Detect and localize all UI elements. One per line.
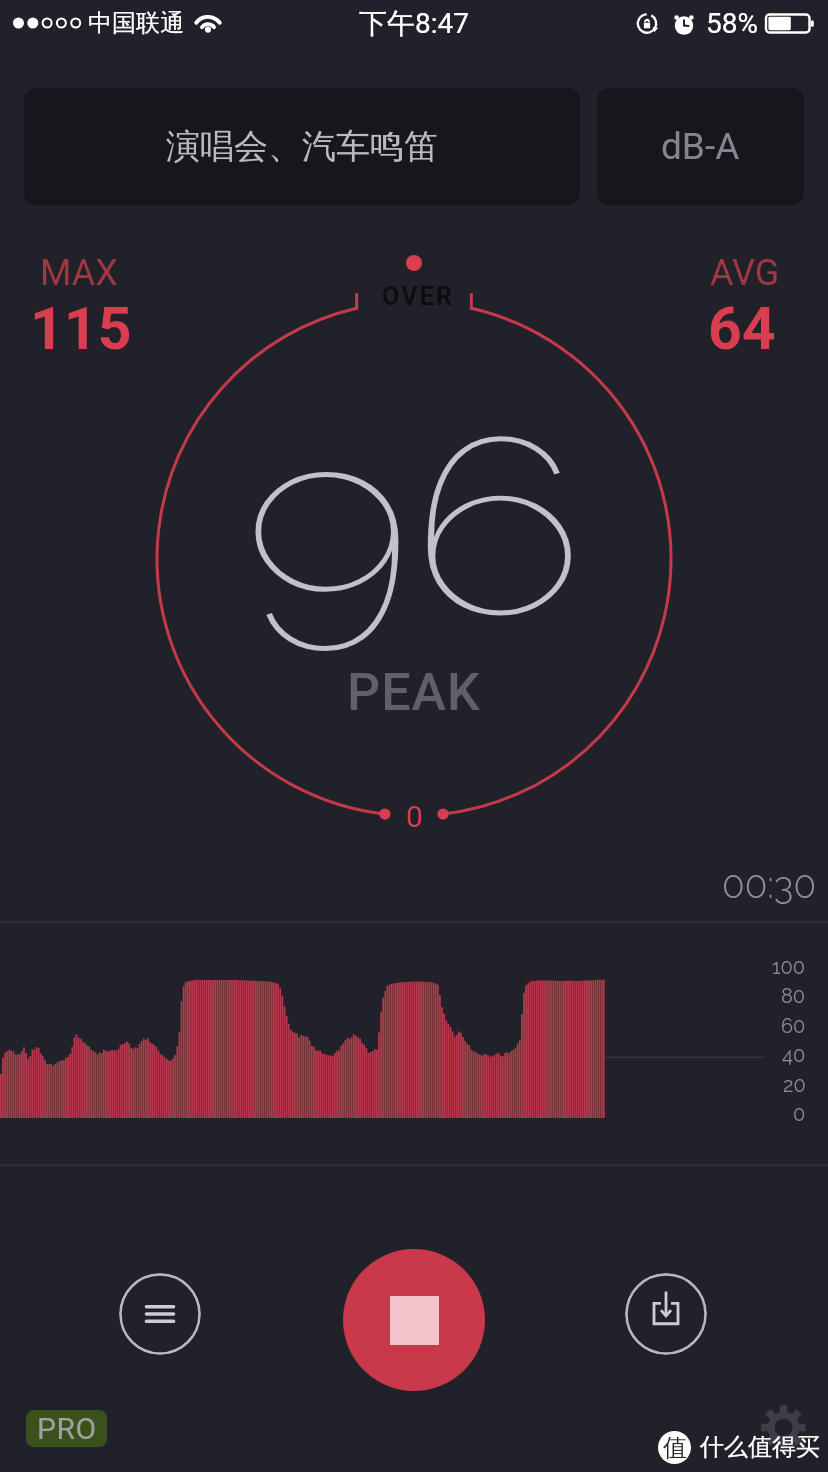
staticText: PRO <box>37 1411 97 1446</box>
staticText: OVER <box>382 282 455 311</box>
staticText: 0 <box>406 799 423 834</box>
staticText: 20 <box>783 1073 806 1096</box>
staticText: dB-A <box>661 125 740 168</box>
button[interactable]: 演唱会、汽车鸣笛 <box>24 88 580 205</box>
staticText: 58% <box>706 7 758 40</box>
button[interactable]: Save <box>625 1273 707 1355</box>
staticText: 什么值得买 <box>700 1432 820 1462</box>
staticText: 演唱会、汽车鸣笛 <box>166 125 438 168</box>
staticText: 64 <box>708 294 776 363</box>
button[interactable]: PRO <box>26 1410 107 1447</box>
staticText: AVG <box>710 252 780 294</box>
staticText: 96 <box>245 381 583 671</box>
staticText: 值 <box>663 1433 687 1463</box>
staticText: 100 <box>772 955 806 978</box>
staticText: 00:30 <box>0 863 816 906</box>
staticText: 115 <box>30 294 132 363</box>
button[interactable]: Menu <box>119 1273 201 1355</box>
staticText: MAX <box>40 252 118 294</box>
button[interactable]: dB-A <box>597 88 804 205</box>
staticText: 中国联通 <box>88 8 184 38</box>
staticText: 80 <box>781 984 806 1007</box>
staticText: 下午8:47 <box>359 6 469 41</box>
button[interactable]: Stop recording <box>343 1249 485 1391</box>
staticText: 0 <box>793 1102 806 1125</box>
staticText: 60 <box>781 1014 806 1037</box>
staticText: PEAK <box>347 662 481 723</box>
staticText: 40 <box>782 1043 806 1066</box>
